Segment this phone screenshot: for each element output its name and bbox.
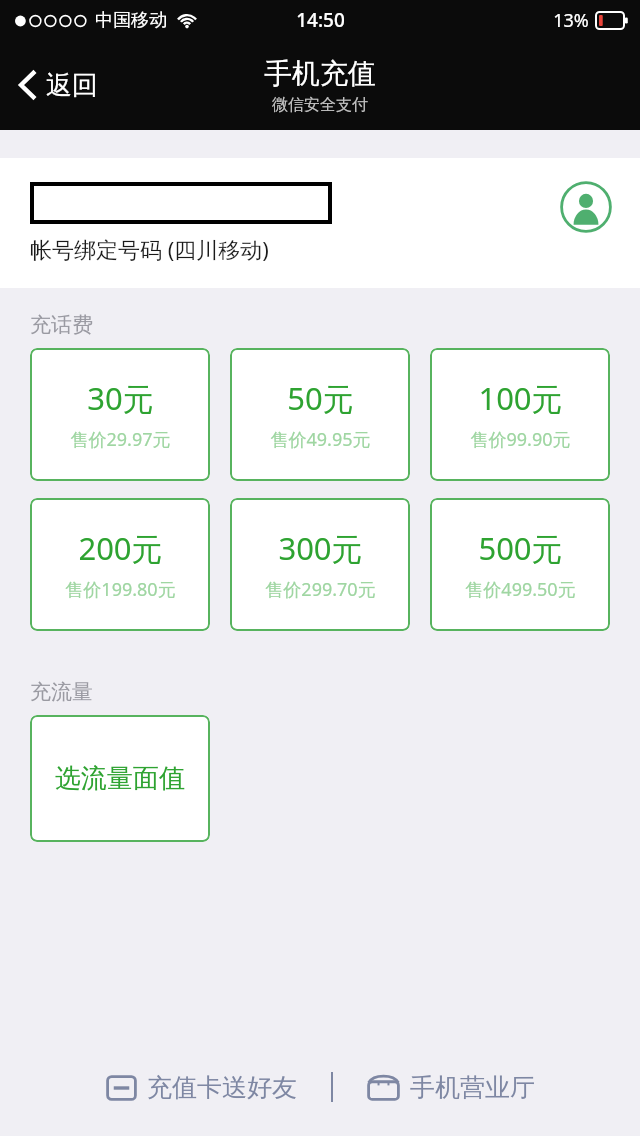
staticText: 售价29.97元 — [70, 427, 171, 452]
staticText: 售价499.50元 — [465, 577, 576, 602]
staticText: 50元 — [287, 377, 354, 419]
staticText: 售价49.95元 — [270, 427, 371, 452]
button[interactable]: 500元 — [430, 498, 610, 631]
staticText: 售价199.80元 — [65, 577, 176, 602]
staticText: 中国移动 — [95, 9, 167, 32]
button[interactable]: 30元 — [30, 348, 210, 481]
button[interactable]: 50元 — [230, 348, 410, 481]
staticText: 充值卡送好友 — [147, 1072, 297, 1103]
staticText: 选流量面值 — [55, 762, 185, 795]
button[interactable]: 充值卡送好友 — [96, 1066, 307, 1109]
staticText: 微信安全支付 — [272, 95, 368, 115]
button[interactable]: 选择联系人 — [560, 181, 612, 233]
staticText: 30元 — [87, 377, 154, 419]
staticText: 100元 — [478, 377, 563, 419]
button[interactable]: 选流量面值 — [30, 715, 210, 842]
staticText: 500元 — [478, 527, 563, 569]
button[interactable]: 200元 — [30, 498, 210, 631]
button[interactable]: 300元 — [230, 498, 410, 631]
button[interactable]: 返回 — [8, 60, 108, 110]
staticText: 14:50 — [296, 7, 345, 33]
staticText: 充话费 — [30, 312, 93, 338]
staticText: 300元 — [278, 527, 363, 569]
staticText: 售价99.90元 — [470, 427, 571, 452]
staticText: 13% — [553, 8, 589, 33]
staticText: 200元 — [78, 527, 163, 569]
button[interactable]: 100元 — [430, 348, 610, 481]
button[interactable]: 手机营业厅 — [357, 1066, 545, 1109]
staticText: 返回 — [46, 69, 98, 102]
staticText: 手机营业厅 — [410, 1072, 535, 1103]
button[interactable]: 手机号码输入框 — [30, 182, 332, 224]
staticText: 充流量 — [30, 679, 93, 705]
staticText: 售价299.70元 — [265, 577, 376, 602]
staticText: 手机充值 — [264, 56, 376, 91]
staticText: 帐号绑定号码 (四川移动) — [30, 234, 269, 264]
